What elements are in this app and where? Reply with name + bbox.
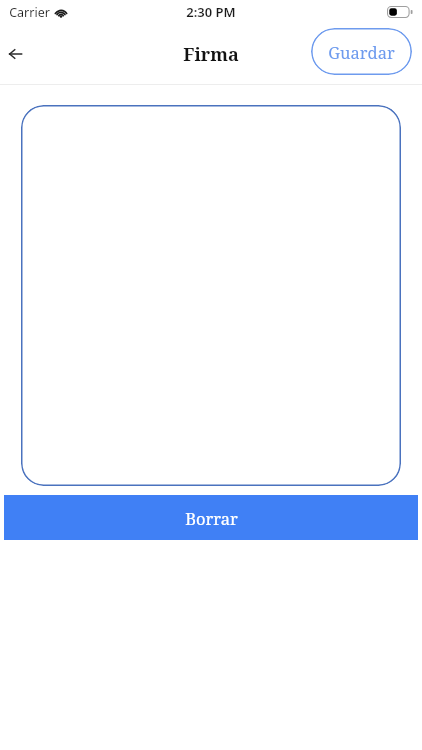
button[interactable]: Guardar bbox=[311, 28, 412, 75]
button[interactable]: Borrar bbox=[4, 495, 418, 540]
staticText: 2:30 PM bbox=[186, 3, 236, 21]
button[interactable]: Back bbox=[2, 41, 28, 67]
button[interactable]: Signature area bbox=[21, 105, 401, 486]
staticText: Guardar bbox=[328, 41, 395, 63]
staticText: Carrier bbox=[9, 4, 50, 21]
staticText: Firma bbox=[183, 42, 239, 67]
staticText: Borrar bbox=[185, 507, 238, 529]
